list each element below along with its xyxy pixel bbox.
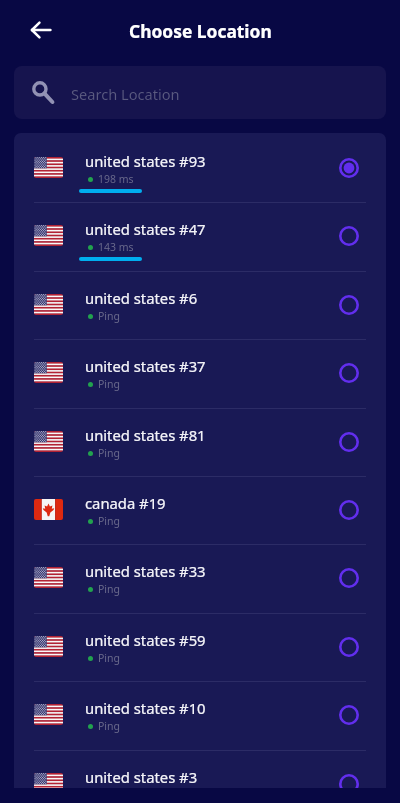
staticText: Ping [98,446,121,460]
staticText: united states #59 [85,630,206,650]
staticText: united states #3 [85,767,198,787]
staticText: united states #10 [85,698,206,718]
staticText: united states #37 [85,356,206,376]
button[interactable]: united states #93 [14,134,386,203]
staticText: canada #19 [85,493,166,513]
staticText: Ping [98,514,121,528]
staticText: united states #6 [85,288,198,308]
staticText: Ping [98,719,121,733]
staticText: Ping [98,651,121,665]
staticText: 198 ms [98,172,134,186]
staticText: Ping [98,582,121,596]
button[interactable]: united states #3 [14,750,386,788]
button[interactable]: united states #47 [14,202,386,271]
button[interactable]: Search Location [14,66,386,119]
staticText: Search Location [71,84,180,104]
button[interactable]: united states #59 [14,613,386,682]
button[interactable]: united states #6 [14,271,386,340]
staticText: united states #81 [85,425,206,445]
staticText: 143 ms [98,240,134,254]
staticText: Choose Location [129,19,272,43]
button[interactable]: united states #10 [14,681,386,750]
staticText: united states #47 [85,219,206,239]
staticText: Ping [98,309,121,323]
button[interactable]: united states #81 [14,408,386,477]
button[interactable]: united states #33 [14,544,386,613]
button[interactable]: Back [21,10,61,50]
button[interactable]: united states #37 [14,339,386,408]
staticText: united states #93 [85,151,206,171]
button[interactable]: canada #19 [14,476,386,545]
staticText: Ping [98,377,121,391]
staticText: united states #33 [85,561,206,581]
